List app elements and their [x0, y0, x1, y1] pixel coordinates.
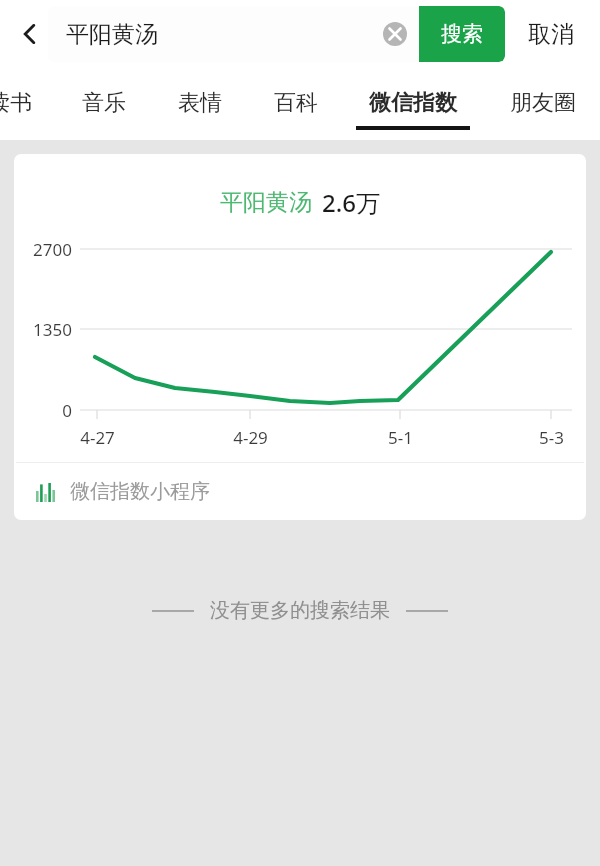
button[interactable]: 微信指数小程序	[14, 463, 586, 520]
staticText: 2700	[33, 238, 72, 260]
button[interactable]: Clear text	[375, 14, 415, 54]
button[interactable]: 表情	[156, 68, 244, 140]
staticText: 2.6万	[322, 186, 380, 219]
staticText: 平阳黄汤	[66, 20, 158, 49]
staticText: 5-3	[539, 426, 564, 449]
staticText: 搜索	[441, 21, 483, 47]
staticText: 平阳黄汤	[220, 188, 312, 217]
staticText: 0	[62, 399, 72, 421]
staticText: 音乐	[82, 89, 126, 117]
staticText: 百科	[274, 89, 318, 117]
button[interactable]: 读书	[0, 68, 54, 140]
staticText: 5-1	[388, 426, 413, 449]
button[interactable]: 音乐	[60, 68, 148, 140]
button[interactable]: 平阳黄汤	[14, 154, 586, 520]
button[interactable]: 平阳黄汤	[48, 14, 419, 54]
staticText: 朋友圈	[510, 89, 576, 117]
staticText: 表情	[178, 89, 222, 117]
button[interactable]: 微信指数	[355, 68, 471, 140]
staticText: 读书	[0, 89, 32, 117]
button[interactable]: 百科	[252, 68, 340, 140]
button[interactable]: Back	[8, 12, 52, 56]
staticText: 1350	[33, 318, 72, 340]
staticText: 没有更多的搜索结果	[210, 598, 390, 623]
staticText: 4-27	[80, 426, 115, 449]
button[interactable]: 取消	[512, 0, 590, 68]
staticText: 取消	[528, 20, 574, 49]
staticText: 微信指数小程序	[70, 479, 210, 504]
button[interactable]: 搜索	[419, 6, 505, 62]
staticText: 微信指数	[369, 89, 457, 117]
staticText: 4-29	[233, 426, 268, 449]
button[interactable]: 朋友圈	[499, 68, 587, 140]
